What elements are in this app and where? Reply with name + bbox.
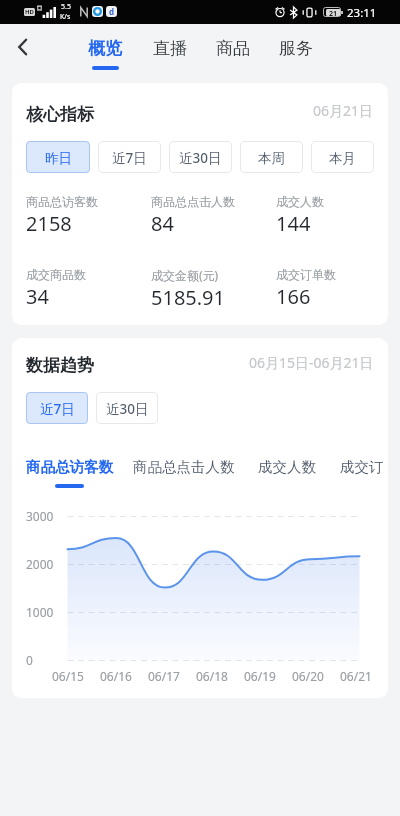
staticText: 商品总点击人数	[133, 458, 235, 476]
staticText: 21	[329, 9, 338, 16]
button[interactable]: 近7日	[26, 392, 88, 424]
staticText: 84	[151, 210, 174, 237]
button[interactable]: 商品总点击人数	[133, 458, 235, 488]
staticText: 核心指标	[26, 104, 94, 125]
staticText: 数据趋势	[26, 355, 94, 376]
staticText: 本月	[329, 150, 356, 167]
staticText: K/s	[60, 12, 71, 22]
staticText: 成交人数	[258, 458, 316, 476]
staticText: 成交订单数	[276, 267, 336, 282]
staticText: 成交订单数	[340, 458, 388, 476]
staticText: 近7日	[40, 400, 75, 418]
staticText: 服务	[279, 38, 313, 59]
staticText: 近30日	[179, 149, 222, 167]
staticText: 34	[26, 283, 49, 310]
staticText: d	[109, 6, 115, 17]
staticText: 06/21	[340, 668, 372, 684]
staticText: 0	[26, 652, 33, 668]
button[interactable]: 成交订单数	[340, 458, 388, 488]
staticText: 144	[276, 210, 311, 237]
staticText: 06月15日-06月21日	[249, 353, 374, 372]
button[interactable]: 直播	[153, 24, 187, 70]
staticText: 近30日	[106, 400, 149, 418]
button[interactable]: 近7日	[98, 141, 161, 173]
staticText: 166	[276, 283, 311, 310]
staticText: 成交金额(元)	[151, 267, 219, 283]
staticText: HD	[25, 8, 34, 16]
button[interactable]: 近30日	[96, 392, 158, 424]
button[interactable]: 成交人数	[258, 458, 316, 488]
staticText: 5185.91	[151, 284, 225, 311]
staticText: 1000	[26, 604, 54, 620]
staticText: 3000	[26, 508, 54, 524]
button[interactable]: 近30日	[169, 141, 232, 173]
button[interactable]: 商品	[216, 24, 250, 70]
staticText: 成交商品数	[26, 267, 86, 282]
staticText: 06月21日	[313, 101, 374, 120]
staticText: 直播	[153, 38, 187, 59]
button[interactable]: 本月	[311, 141, 374, 173]
staticText: 成交人数	[276, 194, 324, 209]
button[interactable]: 概览	[88, 24, 122, 70]
button[interactable]: 本周	[240, 141, 303, 173]
staticText: 近7日	[112, 149, 147, 167]
staticText: 概览	[88, 38, 122, 59]
staticText: 06/16	[100, 668, 132, 684]
staticText: 商品	[216, 38, 250, 59]
staticText: 商品总访客数	[26, 194, 98, 209]
staticText: 2158	[26, 210, 72, 237]
staticText: 06/15	[52, 668, 84, 684]
button[interactable]: 服务	[279, 24, 313, 70]
staticText: 2000	[26, 556, 54, 572]
button[interactable]: 商品总访客数	[26, 458, 113, 488]
staticText: 23:11	[347, 5, 377, 21]
staticText: 06/20	[292, 668, 324, 684]
staticText: 5.5	[61, 2, 71, 12]
button[interactable]: 昨日	[26, 141, 90, 173]
staticText: 06/18	[196, 668, 228, 684]
staticText: 商品总点击人数	[151, 194, 235, 209]
staticText: 06/17	[148, 668, 180, 684]
staticText: 昨日	[45, 150, 72, 167]
button[interactable]: 返回	[4, 28, 42, 66]
staticText: 06/19	[244, 668, 276, 684]
staticText: 本周	[258, 150, 285, 167]
staticText: 商品总访客数	[26, 458, 113, 476]
